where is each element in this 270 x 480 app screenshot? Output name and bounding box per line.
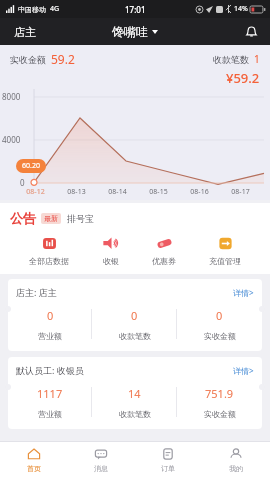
staticText: 详情> — [233, 287, 254, 298]
button[interactable]: 消息 — [67, 442, 134, 480]
button[interactable]: 优惠券 — [148, 233, 180, 268]
staticText: 排号宝 — [67, 213, 94, 224]
staticText: 08-12 — [15, 187, 56, 197]
staticText: 4000 — [2, 134, 21, 145]
staticText: 收款笔数 — [213, 54, 249, 65]
staticText: 08-13 — [56, 187, 97, 197]
staticText: 0 — [47, 308, 54, 323]
staticText: 详情> — [233, 365, 254, 376]
staticText: 全部店数据 — [29, 256, 69, 266]
staticText: ¥59.2 — [226, 69, 260, 87]
staticText: 馋嘴哇 — [112, 24, 148, 39]
button[interactable]: 默认员工: 收银员 — [8, 357, 262, 429]
staticText: 实收金额 — [204, 331, 236, 341]
staticText: 收款笔数 — [119, 409, 151, 419]
staticText: 14% — [234, 4, 248, 14]
button[interactable]: 订单 — [134, 442, 202, 480]
staticText: 751.9 — [205, 386, 234, 401]
button[interactable]: 馋嘴哇 — [106, 21, 164, 42]
staticText: 中国移动 — [18, 5, 46, 14]
button[interactable]: Notifications — [239, 20, 270, 43]
staticText: 0 — [131, 308, 138, 323]
button[interactable]: 店主 — [0, 19, 42, 45]
staticText: 店主: 店主 — [16, 286, 57, 298]
button[interactable]: 全部店数据 — [25, 233, 73, 268]
staticText: 最新 — [44, 214, 58, 223]
button[interactable]: 收银 — [98, 233, 123, 268]
staticText: 08-14 — [97, 187, 138, 197]
button[interactable]: 我的 — [202, 442, 270, 480]
staticText: 充值管理 — [209, 256, 241, 266]
staticText: 实收金额 — [10, 54, 46, 65]
staticText: 4G — [50, 4, 60, 14]
staticText: 08-15 — [138, 187, 179, 197]
staticText: 优惠券 — [152, 256, 176, 266]
staticText: 14 — [128, 386, 141, 401]
staticText: 收款笔数 — [119, 331, 151, 341]
staticText: 08-17 — [220, 187, 261, 197]
staticText: 60.20 — [22, 161, 40, 171]
button[interactable]: 首页 — [0, 442, 67, 480]
staticText: 17:01 — [125, 4, 146, 15]
staticText: 0 — [216, 308, 223, 323]
staticText: 8000 — [2, 91, 21, 102]
staticText: 消息 — [94, 464, 108, 473]
staticText: 我的 — [229, 464, 243, 473]
staticText: 首页 — [27, 464, 41, 473]
staticText: 59.2 — [51, 51, 75, 67]
staticText: 营业额 — [38, 331, 62, 341]
staticText: 1117 — [37, 386, 63, 401]
button[interactable]: 公告 — [0, 208, 270, 228]
staticText: 默认员工: 收银员 — [16, 364, 84, 376]
staticText: 08-16 — [179, 187, 220, 197]
staticText: 1 — [254, 52, 260, 66]
staticText: 公告 — [10, 210, 36, 226]
staticText: 营业额 — [38, 409, 62, 419]
staticText: 订单 — [161, 464, 175, 473]
button[interactable]: 店主: 店主 — [8, 279, 262, 351]
staticText: 0 — [20, 177, 25, 188]
staticText: 实收金额 — [204, 409, 236, 419]
staticText: 收银 — [103, 256, 119, 266]
button[interactable]: 充值管理 — [205, 233, 245, 268]
